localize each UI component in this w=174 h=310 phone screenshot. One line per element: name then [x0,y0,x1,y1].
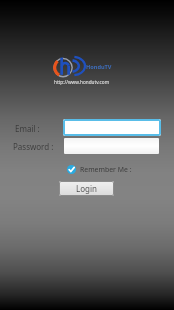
staticText: Email : [15,123,40,134]
button[interactable] [63,119,161,136]
button[interactable]: Remember Me : [67,163,132,175]
staticText: http://www.hondutv.com [54,79,110,85]
button[interactable] [64,138,159,154]
staticText: Password : [13,141,54,152]
staticText: Login [76,183,97,194]
staticText: Remember Me : [80,165,132,174]
staticText: HonduTV [86,63,112,71]
button[interactable]: Login [59,181,114,196]
